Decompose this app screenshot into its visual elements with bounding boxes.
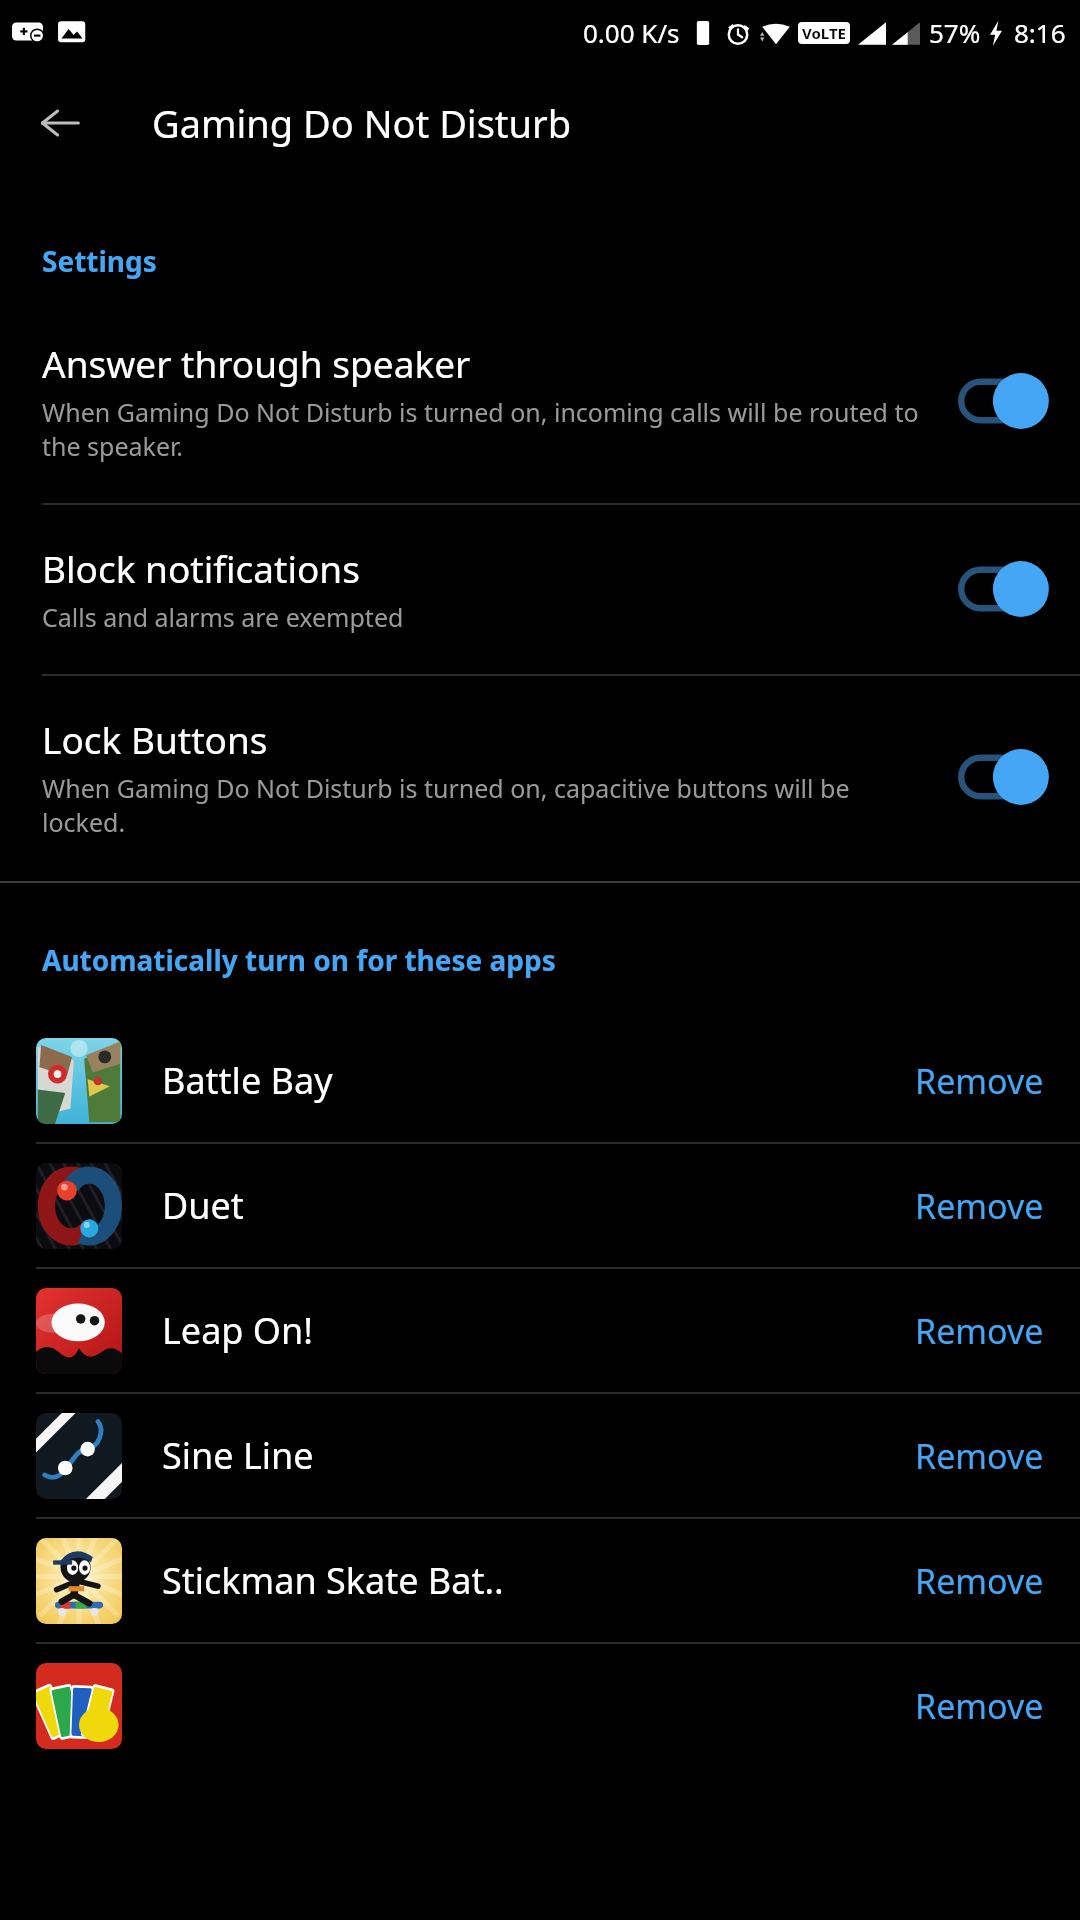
staticText: Remove [915,1683,1044,1729]
staticText: Gaming Do Not Disturb [152,97,572,149]
staticText: 57% [929,15,981,50]
staticText: Leap On! [162,1306,909,1355]
staticText: Remove [915,1558,1044,1604]
staticText: Remove [915,1058,1044,1104]
staticText: Block notifications [42,543,360,593]
button[interactable]: Remove [909,1300,1050,1362]
staticText: Battle Bay [162,1056,909,1105]
button[interactable]: Remove [909,1050,1050,1112]
button[interactable]: Remove [909,1675,1050,1737]
staticText: Answer through speaker [42,338,471,388]
button[interactable]: Answer through speaker [0,338,1080,463]
button[interactable]: Leap On! [0,1269,1080,1392]
staticText: Stickman Skate Bat.. [162,1556,909,1605]
staticText: 8:16 [1014,15,1066,50]
staticText: When Gaming Do Not Disturb is turned on,… [42,771,938,839]
button[interactable]: Lock Buttons [0,714,1080,839]
staticText: Automatically turn on for these apps [42,941,556,979]
staticText: When Gaming Do Not Disturb is turned on,… [42,395,938,463]
staticText: Remove [915,1433,1044,1479]
staticText: Lock Buttons [42,714,268,764]
button[interactable]: Sine Line [0,1394,1080,1517]
staticText: VoLTE [802,23,846,43]
staticText: Remove [915,1308,1044,1354]
button[interactable]: Back [22,85,98,161]
staticText: Duet [162,1181,909,1230]
button[interactable]: Block notifications [0,543,1080,634]
button[interactable]: Duet [0,1144,1080,1267]
button[interactable]: Battle Bay [0,1019,1080,1142]
button[interactable]: Remove [0,1644,1080,1767]
button[interactable]: Remove [909,1550,1050,1612]
staticText: Remove [915,1183,1044,1229]
staticText: 0.00 K/s [583,15,680,50]
button[interactable]: Remove [909,1175,1050,1237]
staticText: Settings [42,242,157,280]
button[interactable]: Stickman Skate Bat.. [0,1519,1080,1642]
staticText: Sine Line [162,1431,909,1480]
button[interactable]: Remove [909,1425,1050,1487]
staticText: Calls and alarms are exempted [42,600,404,634]
